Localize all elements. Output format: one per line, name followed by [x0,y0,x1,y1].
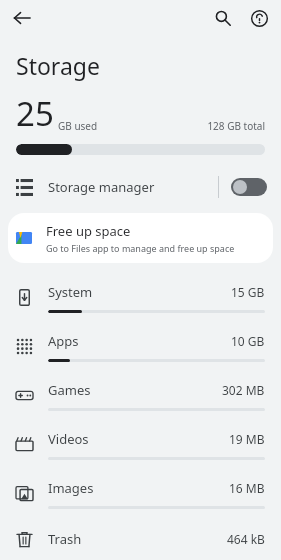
staticText: 128 GB total [207,119,265,133]
button[interactable]: Videos [0,420,281,469]
button[interactable]: Free up space [8,213,273,263]
staticText: 16 MB [229,480,265,496]
staticText: Images [48,479,94,497]
button[interactable]: System [0,273,281,322]
button[interactable]: Apps [0,322,281,371]
staticText: Apps [48,332,79,350]
staticText: Storage [16,50,100,81]
staticText: Trash [48,530,82,548]
staticText: 302 MB [222,382,265,398]
button[interactable]: Search [209,4,237,32]
staticText: 15 GB [231,284,265,300]
staticText: Go to Files app to manage and free up sp… [46,242,235,254]
button[interactable]: Storage manager toggle [231,178,267,196]
staticText: 25 [16,91,54,136]
staticText: Games [48,381,91,399]
staticText: 10 GB [231,333,265,349]
button[interactable]: Storage manager [0,169,281,205]
button[interactable]: Games [0,371,281,420]
button[interactable]: Images [0,469,281,518]
button[interactable]: Back [8,4,36,32]
staticText: Storage manager [48,178,155,196]
staticText: Free up space [46,222,131,240]
staticText: 464 kB [227,531,265,547]
staticText: 19 MB [229,431,265,447]
staticText: Videos [48,430,89,448]
button[interactable]: Trash [0,518,281,560]
staticText: GB used [58,119,98,133]
staticText: System [48,283,93,301]
button[interactable]: Help [245,4,273,32]
